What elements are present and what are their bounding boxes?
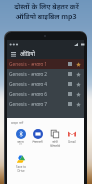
- staticText: दोस्तों के लिए बेहतर करें: [14, 2, 79, 12]
- button[interactable]: Save to Drive: [12, 154, 29, 173]
- staticText: Genesis - अध्याय 7: [9, 101, 48, 108]
- button[interactable]: Genesis - अध्याय 7: [7, 99, 84, 109]
- staticText: Genesis - अध्याय 1: [9, 61, 48, 68]
- button[interactable]: Gmail: [63, 129, 80, 144]
- button[interactable]: ब्लूटूथ: [12, 129, 29, 144]
- staticText: Genesis - अध्याय 2: [9, 71, 48, 78]
- staticText: Genesis - अध्याय 4: [9, 81, 48, 88]
- button[interactable]: Genesis - अध्याय 4: [7, 79, 84, 89]
- button[interactable]: Genesis - अध्याय 1: [7, 59, 84, 69]
- staticText: Save to Drive: [16, 165, 26, 173]
- button[interactable]: Menu: [7, 48, 20, 59]
- button[interactable]: कॉपी क्लिपबोर्ड: [46, 129, 63, 148]
- button[interactable]: Genesis - अध्याय 6: [7, 89, 84, 99]
- staticText: साझा करें: [11, 120, 24, 125]
- button[interactable]: Genesis - अध्याय 2: [7, 69, 84, 79]
- staticText: निकटवर्ती: [32, 140, 43, 144]
- staticText: ऑडियो बाइबिल mp3: [15, 12, 77, 22]
- staticText: ब्लूटूथ: [17, 140, 24, 144]
- staticText: Gmail: [68, 140, 76, 144]
- staticText: ऑडियो: [20, 50, 35, 58]
- button[interactable]: निकटवर्ती: [29, 129, 46, 144]
- staticText: Genesis - अध्याय 6: [9, 91, 48, 98]
- staticText: कॉपी क्लिपबोर्ड: [50, 140, 60, 148]
